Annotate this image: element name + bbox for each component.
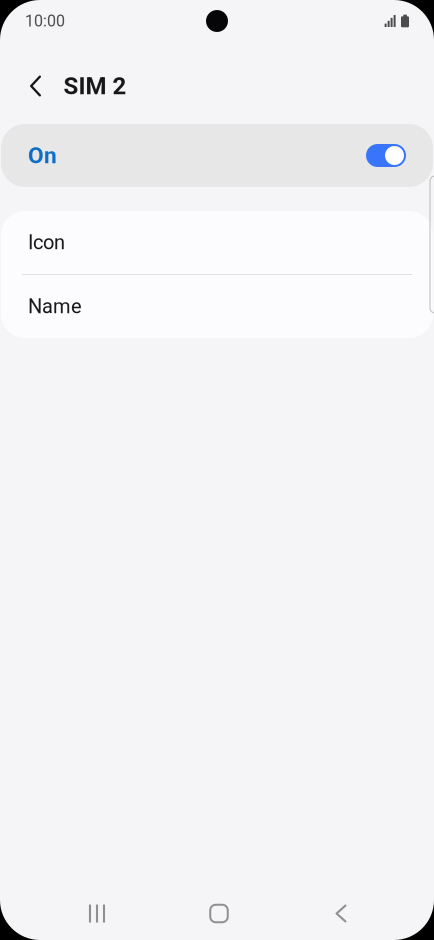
button[interactable]: Back xyxy=(280,887,402,940)
button[interactable]: Icon xyxy=(1,211,433,274)
button[interactable]: Back xyxy=(15,56,55,116)
staticText: Icon xyxy=(28,231,65,254)
staticText: 10:00 xyxy=(25,12,65,30)
staticText: SIM 2 xyxy=(63,72,126,100)
button[interactable]: Name xyxy=(1,275,433,338)
staticText: On xyxy=(28,142,57,169)
staticText: Name xyxy=(28,295,82,318)
button[interactable]: Home xyxy=(158,887,280,940)
button[interactable]: Recents xyxy=(36,887,158,940)
button[interactable]: On xyxy=(1,124,433,187)
